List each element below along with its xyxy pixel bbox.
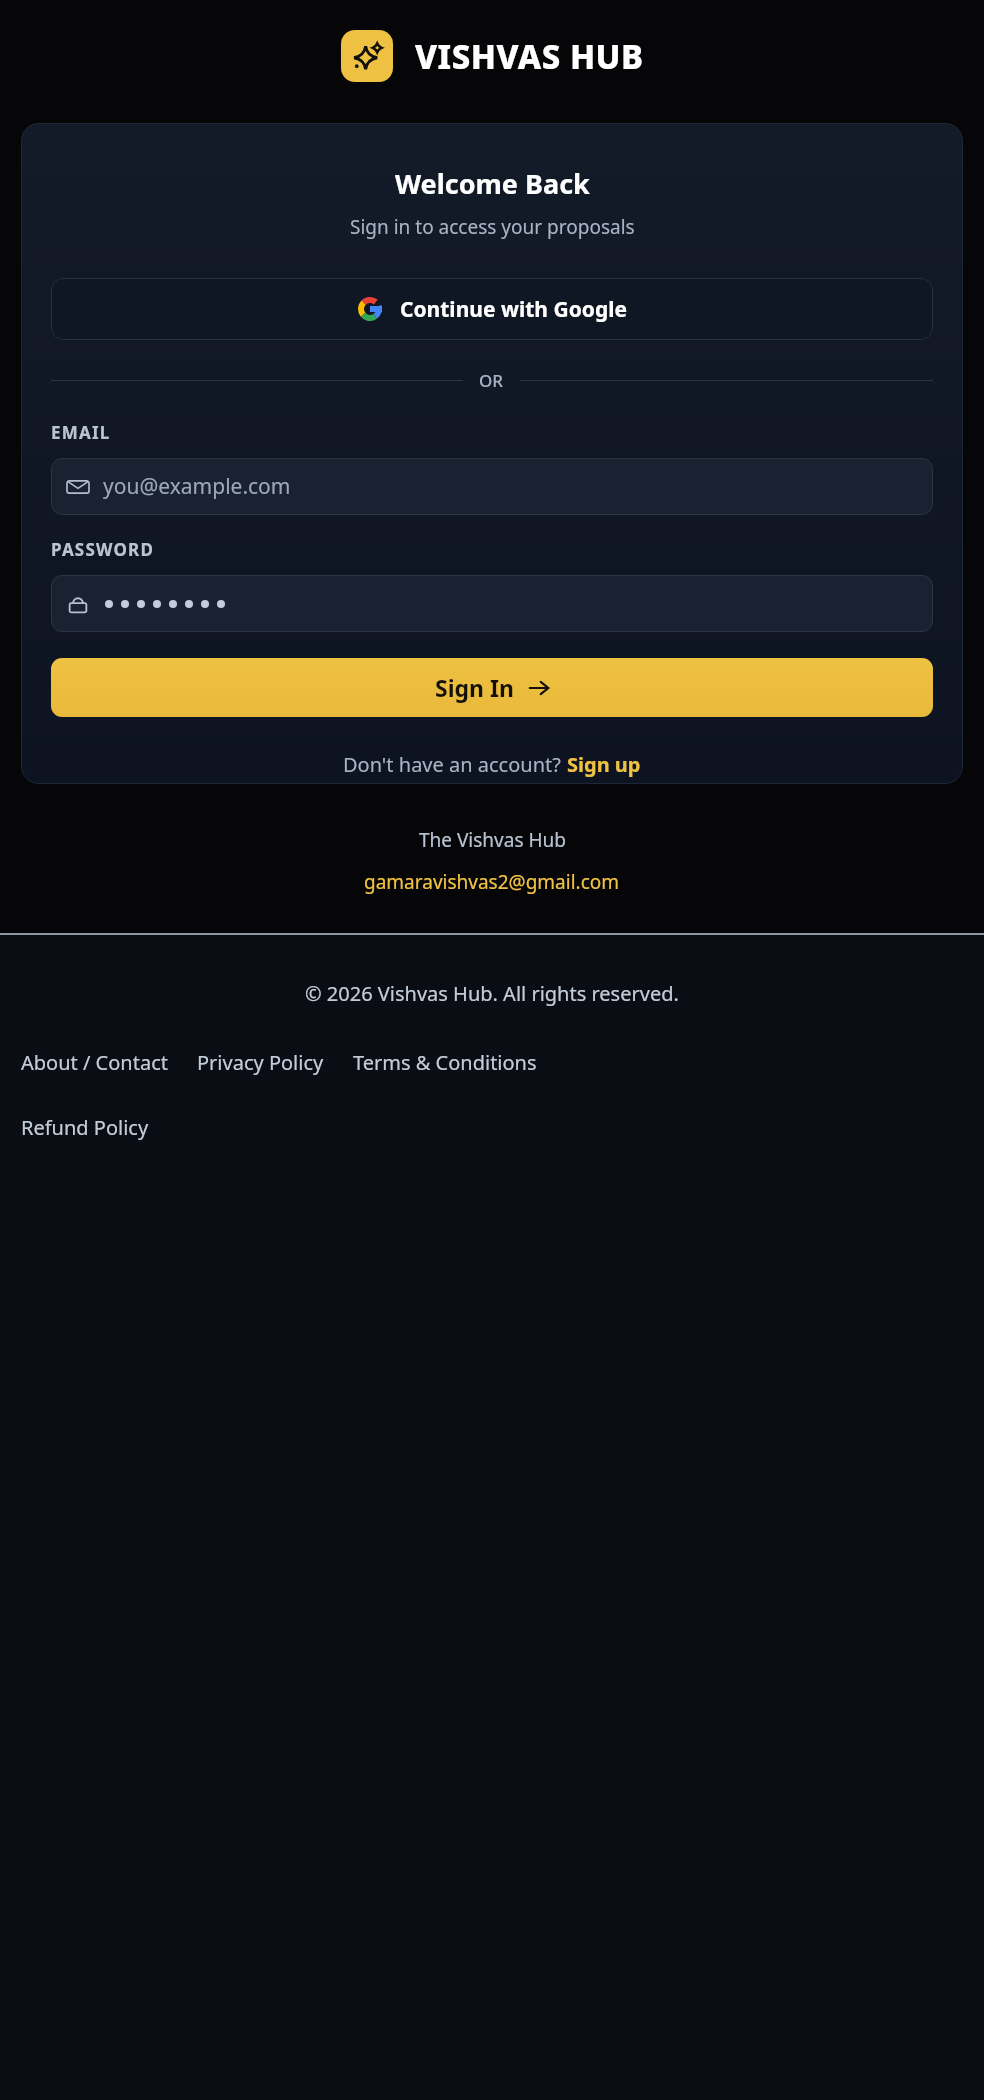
button[interactable]: gamaravishvas2@gmail.com (364, 869, 620, 895)
staticText: Sign up (567, 751, 641, 778)
button[interactable]: Refund Policy (21, 1114, 149, 1141)
staticText: Privacy Policy (197, 1049, 324, 1076)
button[interactable]: Privacy Policy (197, 1049, 324, 1076)
staticText: The Vishvas Hub (419, 827, 566, 853)
staticText: Sign in to access your proposals (350, 214, 635, 240)
staticText: you@example.com (103, 472, 291, 501)
button[interactable]: Continue with Google (51, 278, 933, 340)
button[interactable]: Sign In (51, 658, 933, 717)
staticText: OR (479, 369, 504, 392)
staticText: Welcome Back (395, 165, 590, 202)
staticText: Refund Policy (21, 1114, 149, 1141)
button[interactable] (51, 575, 933, 632)
button[interactable]: you@example.com (51, 458, 933, 515)
staticText: Terms & Conditions (353, 1049, 537, 1076)
staticText: PASSWORD (51, 538, 155, 561)
staticText: Continue with Google (400, 295, 627, 324)
staticText: About / Contact (21, 1049, 168, 1076)
button[interactable]: About / Contact (21, 1049, 168, 1076)
staticText: VISHVAS HUB (415, 34, 644, 79)
button[interactable]: Don't have an account? (343, 751, 641, 778)
staticText: Sign In (435, 672, 514, 703)
button[interactable]: Terms & Conditions (353, 1049, 537, 1076)
staticText: EMAIL (51, 421, 111, 444)
staticText: Don't have an account? (343, 751, 567, 778)
staticText: © 2026 Vishvas Hub. All rights reserved. (305, 980, 679, 1007)
